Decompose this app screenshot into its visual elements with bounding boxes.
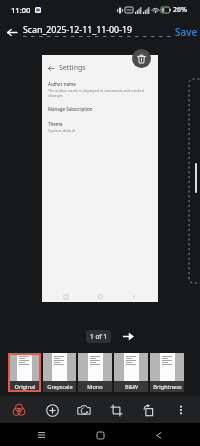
button[interactable]: Home [91, 426, 109, 444]
staticText: Theme [48, 121, 63, 127]
staticText: Original [14, 383, 36, 391]
staticText: Mono [87, 383, 103, 391]
staticText: Scan_2025-12-11_11-00-19 [23, 24, 133, 36]
staticText: Manage Subscription [48, 106, 93, 112]
staticText: Grayscale [47, 383, 73, 391]
staticText: 26% [173, 5, 187, 15]
button[interactable]: Retake [71, 397, 97, 423]
staticText: B&W [125, 383, 138, 391]
button[interactable]: Recents [32, 426, 50, 444]
staticText: The author name is displayed in comments… [48, 88, 156, 98]
staticText: 1 of 1 [90, 332, 107, 341]
staticText: Settings [59, 63, 86, 73]
button[interactable]: 1 of 1 [86, 330, 111, 343]
staticText: Brightness [153, 383, 182, 391]
button[interactable]: Add page [39, 397, 65, 423]
button[interactable]: Crop [103, 397, 129, 423]
button[interactable]: Next page [119, 328, 137, 344]
button[interactable]: Brightness [150, 353, 184, 392]
staticText: Author name [48, 81, 76, 87]
staticText: Save [175, 25, 198, 39]
staticText: System default [48, 128, 76, 133]
button[interactable]: More options [168, 397, 194, 423]
button[interactable]: Scan_2025-12-11_11-00-19 [23, 24, 133, 36]
button[interactable]: Mono [78, 353, 112, 392]
button[interactable]: B&W [114, 353, 148, 392]
button[interactable]: Back [1, 21, 23, 43]
button[interactable]: Back [150, 426, 168, 444]
button[interactable]: Rotate [135, 397, 161, 423]
button[interactable]: Grayscale [43, 353, 76, 392]
staticText: 11:00 [11, 5, 31, 15]
button[interactable]: Delete page [132, 49, 151, 68]
button[interactable]: Filters [6, 397, 32, 423]
button[interactable]: Original [8, 353, 41, 392]
button[interactable]: Save [172, 22, 200, 42]
